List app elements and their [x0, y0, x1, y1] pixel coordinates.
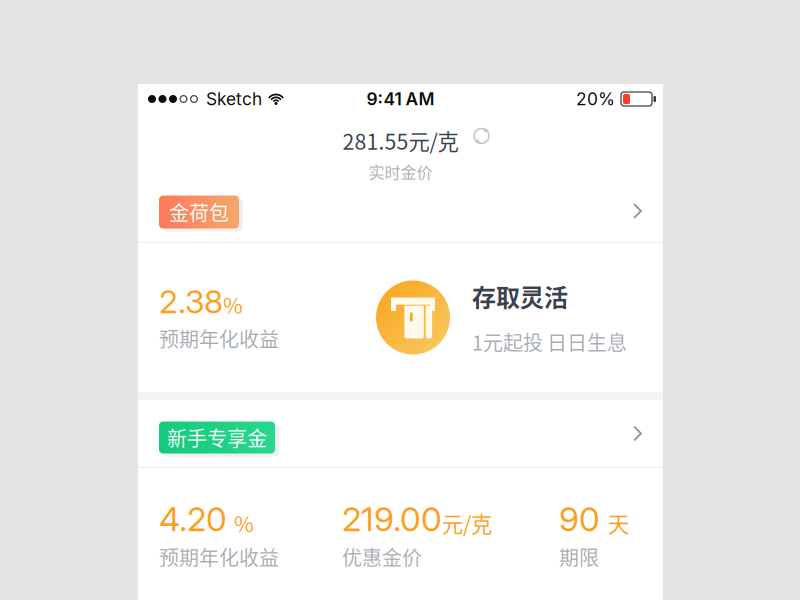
staticText: Sketch: [206, 88, 262, 109]
staticText: 4.20: [159, 499, 227, 539]
staticText: %: [234, 507, 254, 538]
staticText: 存取灵活: [472, 279, 568, 313]
button[interactable]: 2.38: [138, 243, 663, 392]
staticText: 9:41 AM: [366, 88, 434, 109]
staticText: 实时金价: [368, 160, 432, 183]
staticText: 90: [559, 499, 600, 539]
staticText: 20%: [576, 88, 615, 109]
staticText: 新手专享金: [167, 423, 267, 452]
staticText: 期限: [559, 542, 599, 571]
staticText: 2.38: [159, 282, 223, 321]
staticText: 元/克: [442, 507, 492, 538]
staticText: 219.00: [342, 499, 442, 539]
staticText: 1元起投 日日生息: [472, 327, 627, 356]
staticText: 金荷包: [169, 197, 229, 226]
staticText: 预期年化收益: [159, 324, 279, 353]
staticText: 优惠金价: [342, 542, 422, 571]
staticText: 预期年化收益: [159, 542, 279, 571]
button[interactable]: 金荷包: [138, 180, 663, 242]
staticText: 天: [608, 507, 629, 538]
staticText: %: [223, 289, 243, 320]
button[interactable]: 新手专享金: [138, 400, 663, 467]
staticText: 281.55元/克: [342, 125, 458, 156]
